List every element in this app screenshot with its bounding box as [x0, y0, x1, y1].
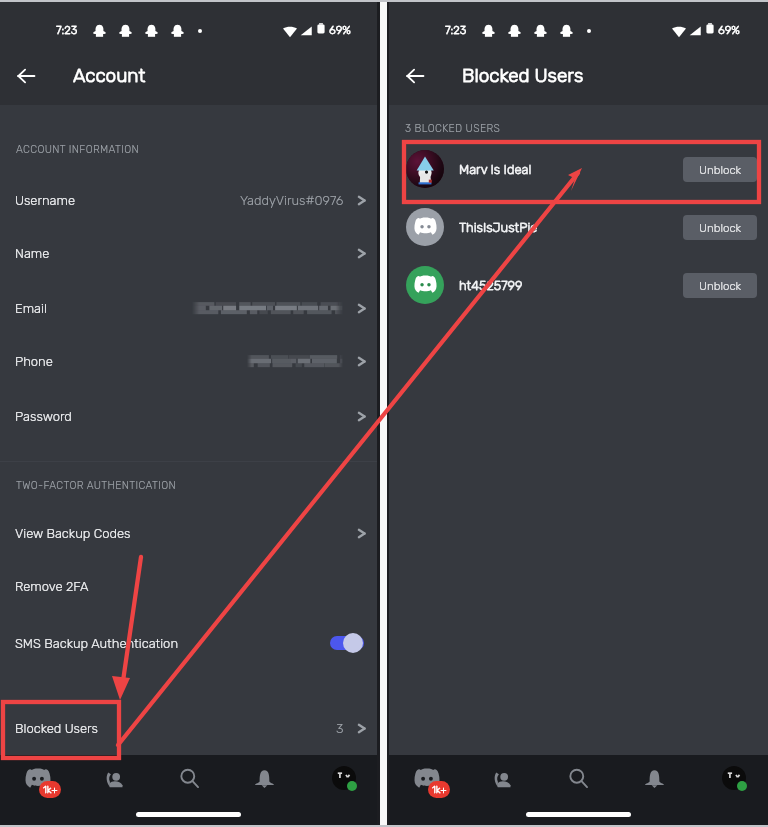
- staticText: Blocked Users: [15, 721, 98, 736]
- staticText: ht4525799: [459, 278, 523, 293]
- staticText: Username: [15, 193, 76, 208]
- button[interactable]: Email: [0, 281, 377, 335]
- staticText: ThisIsJustPie: [459, 220, 538, 235]
- button[interactable]: View Backup Codes: [0, 506, 377, 560]
- staticText: Password: [15, 409, 72, 424]
- button[interactable]: ht4525799: [389, 256, 768, 314]
- staticText: 3 BLOCKED USERS: [405, 122, 501, 134]
- staticText: Unblock: [699, 163, 742, 177]
- button[interactable]: Unblock: [683, 273, 757, 298]
- button[interactable]: Notifications: [227, 760, 302, 796]
- staticText: 1k+: [43, 784, 58, 795]
- staticText: Marv Is Ideal: [459, 162, 532, 177]
- button[interactable]: Unblock: [683, 157, 757, 182]
- staticText: 7:23: [445, 23, 467, 37]
- button[interactable]: SMS Backup Authentication: [0, 616, 377, 670]
- button[interactable]: Profile: [692, 760, 768, 796]
- staticText: Phone: [15, 354, 53, 369]
- button[interactable]: Servers: [389, 760, 464, 796]
- button[interactable]: Remove 2FA: [0, 559, 377, 613]
- staticText: Unblock: [699, 221, 742, 235]
- button[interactable]: ThisIsJustPie: [389, 198, 768, 256]
- staticText: Remove 2FA: [15, 579, 89, 594]
- staticText: Blocked Users: [462, 64, 584, 87]
- button[interactable]: Notifications: [616, 760, 692, 796]
- staticText: 3: [336, 721, 344, 736]
- button[interactable]: Marv Is Ideal: [389, 140, 768, 198]
- button[interactable]: Name: [0, 226, 377, 280]
- button[interactable]: Search: [540, 760, 616, 796]
- button[interactable]: Profile: [302, 760, 377, 796]
- staticText: 7:23: [56, 23, 78, 37]
- staticText: Unblock: [699, 279, 742, 293]
- button[interactable]: Friends: [76, 760, 152, 796]
- button[interactable]: Password: [0, 389, 377, 443]
- staticText: YaddyVirus#0976: [240, 193, 344, 208]
- staticText: 69%: [329, 23, 351, 37]
- button[interactable]: Back: [8, 58, 44, 94]
- button[interactable]: Username: [0, 173, 377, 227]
- button[interactable]: Unblock: [683, 215, 757, 240]
- staticText: SMS Backup Authentication: [15, 636, 179, 651]
- staticText: View Backup Codes: [15, 526, 131, 541]
- button[interactable]: Blocked Users: [0, 701, 377, 755]
- staticText: 69%: [718, 23, 740, 37]
- staticText: TWO-FACTOR AUTHENTICATION: [16, 479, 177, 491]
- button[interactable]: Phone: [0, 334, 377, 388]
- button[interactable]: Search: [152, 760, 227, 796]
- staticText: Account: [73, 64, 146, 87]
- staticText: Name: [15, 246, 50, 261]
- button[interactable]: Servers: [0, 760, 76, 796]
- button[interactable]: Back: [397, 58, 433, 94]
- staticText: 1k+: [432, 784, 447, 795]
- staticText: ACCOUNT INFORMATION: [16, 143, 139, 155]
- button[interactable]: Friends: [464, 760, 540, 796]
- staticText: Email: [15, 301, 47, 316]
